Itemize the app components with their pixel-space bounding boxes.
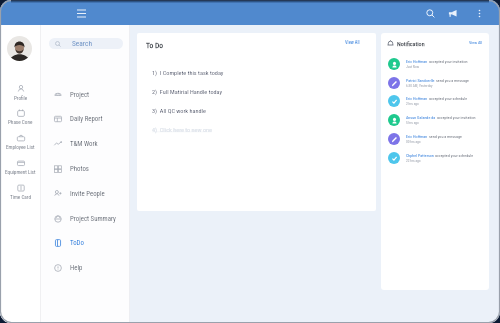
button[interactable]: Patrici Sandoerlle	[381, 74, 489, 92]
staticText: Equipment List	[5, 169, 36, 175]
staticText: T&M Work	[70, 140, 98, 148]
staticText: Search	[72, 39, 93, 48]
button[interactable]: T&M Work	[41, 132, 130, 156]
button[interactable]: More options	[470, 4, 489, 23]
button[interactable]: Photos	[41, 157, 130, 181]
staticText: 00 hrs ago	[406, 140, 421, 144]
button[interactable]: 2) Full Matirial Handle today	[152, 88, 223, 95]
staticText: Profile	[14, 95, 28, 101]
button[interactable]: Eric Hoffman	[381, 92, 489, 110]
staticText: Daily Report	[70, 115, 103, 123]
staticText: View All	[469, 40, 483, 45]
staticText: Help	[70, 264, 83, 272]
button[interactable]: Help	[41, 256, 130, 280]
button[interactable]: Announcements	[443, 4, 462, 23]
button[interactable]: 4) Click here to new one	[152, 126, 212, 133]
staticText: Invite People	[70, 190, 105, 198]
staticText: Photos	[70, 165, 89, 173]
staticText: Eric Hoffman	[406, 134, 428, 139]
staticText: 2 hrs ago	[406, 102, 419, 106]
staticText: Ansun Galande da	[406, 115, 436, 120]
staticText: 3) All QC work handle	[152, 107, 206, 114]
button[interactable]: Search	[421, 4, 440, 23]
button[interactable]: View All	[469, 40, 483, 45]
button[interactable]: Eric Hoffman	[381, 55, 489, 73]
staticText: ToDo	[70, 239, 84, 247]
staticText: send you a message	[428, 134, 462, 139]
button[interactable]: 1) I Complete this task today	[152, 69, 224, 76]
staticText: 2) Full Matirial Handle today	[152, 88, 223, 95]
staticText: 1) I Complete this task today	[152, 69, 224, 76]
staticText: Employee List	[6, 144, 35, 150]
staticText: Just Now	[406, 65, 420, 69]
button[interactable]: 3) All QC work handle	[152, 107, 206, 114]
button[interactable]: Daily Report	[41, 107, 130, 131]
staticText: View All	[345, 40, 360, 45]
staticText: send you a message	[435, 78, 469, 83]
button[interactable]: Chphel Patterson	[381, 149, 489, 167]
button[interactable]: Employee List	[0, 134, 41, 158]
button[interactable]: Project	[41, 83, 130, 107]
staticText: 4) Click here to new one	[152, 126, 212, 133]
button[interactable]: Project Summary	[41, 207, 130, 231]
button[interactable]: Eric Hoffman	[381, 130, 489, 148]
staticText: accepted your schedule	[434, 153, 474, 158]
staticText: accepted your invitation	[436, 115, 476, 120]
staticText: Time Card	[10, 194, 31, 200]
button[interactable]: Phase Cone	[0, 109, 41, 133]
button[interactable]: View All	[345, 40, 360, 45]
button[interactable]: Invite People	[41, 182, 130, 206]
staticText: 5 hrs ago	[406, 121, 419, 125]
staticText: Patrici Sandoerlle	[406, 78, 435, 83]
staticText: To Do	[146, 41, 164, 50]
staticText: Eric Hoffman	[406, 96, 428, 101]
button[interactable]: Time Card	[0, 184, 41, 208]
staticText: accepted your schedule	[428, 96, 468, 101]
staticText: Chphel Patterson	[406, 153, 434, 158]
staticText: Notification	[397, 40, 425, 47]
button[interactable]: Profile	[0, 85, 41, 109]
staticText: 6:30 AM, Yesterday	[406, 84, 433, 88]
staticText: Project Summary	[70, 215, 116, 223]
button[interactable]: Search	[49, 38, 123, 49]
button[interactable]: Ansun Galande da	[381, 111, 489, 129]
button[interactable]: ToDo	[41, 231, 130, 255]
staticText: Phase Cone	[8, 119, 33, 125]
staticText: 22 hrs ago	[406, 159, 421, 163]
staticText: Eric Hoffman	[406, 59, 428, 64]
button[interactable]: Menu	[72, 4, 91, 23]
button[interactable]: Equipment List	[0, 159, 41, 183]
staticText: accepted your invitation	[428, 59, 468, 64]
button[interactable]: Profile photo	[7, 36, 32, 61]
staticText: Project	[70, 91, 90, 99]
